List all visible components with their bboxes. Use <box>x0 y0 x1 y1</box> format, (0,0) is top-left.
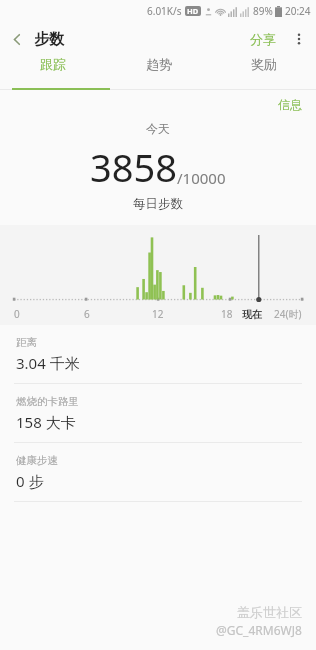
staticText: 158 大卡 <box>16 412 76 432</box>
staticText: 健康步速 <box>16 454 58 467</box>
button[interactable]: 信息 <box>264 95 316 114</box>
staticText: 燃烧的卡路里 <box>16 395 79 408</box>
staticText: 24(时) <box>274 307 302 321</box>
staticText: 12 <box>152 307 164 321</box>
button[interactable]: 燃烧的卡路里 <box>0 384 316 442</box>
staticText: 0 <box>14 307 20 321</box>
staticText: 0 步 <box>16 471 44 491</box>
staticText: 89% <box>253 4 273 18</box>
staticText: 每日步数 <box>133 196 183 212</box>
button[interactable]: 健康步速 <box>0 443 316 501</box>
staticText: 盖乐世社区 <box>237 604 302 620</box>
staticText: 6.01K/s <box>147 4 182 18</box>
staticText: 18 <box>221 307 233 321</box>
staticText: 距离 <box>16 336 37 349</box>
button[interactable]: 趋势 <box>106 56 211 72</box>
staticText: 今天 <box>146 121 170 136</box>
button[interactable]: More options <box>284 24 314 54</box>
staticText: 6 <box>84 307 90 321</box>
button[interactable]: Back <box>0 22 34 56</box>
staticText: 现在 <box>242 308 262 321</box>
button[interactable]: 跟踪 <box>0 56 106 72</box>
button[interactable]: 距离 <box>0 325 316 383</box>
staticText: @GC_4RM6WJ8 <box>216 622 302 638</box>
staticText: 跟踪 <box>40 56 66 72</box>
button[interactable]: 奖励 <box>211 56 316 72</box>
staticText: 3.04 千米 <box>16 353 80 373</box>
staticText: 趋势 <box>146 56 172 72</box>
button[interactable]: 分享 <box>242 25 284 53</box>
staticText: 奖励 <box>251 56 277 72</box>
staticText: /10000 <box>177 168 226 188</box>
staticText: 分享 <box>250 31 276 47</box>
staticText: 3858 <box>90 141 177 193</box>
staticText: HD <box>187 6 199 16</box>
staticText: 信息 <box>278 97 302 112</box>
staticText: 20:24 <box>285 4 311 18</box>
staticText: 步数 <box>34 30 64 49</box>
